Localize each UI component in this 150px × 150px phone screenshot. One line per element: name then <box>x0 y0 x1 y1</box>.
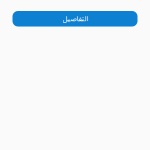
button[interactable]: التفاصيل <box>12 11 137 26</box>
staticText: التفاصيل <box>62 14 88 23</box>
